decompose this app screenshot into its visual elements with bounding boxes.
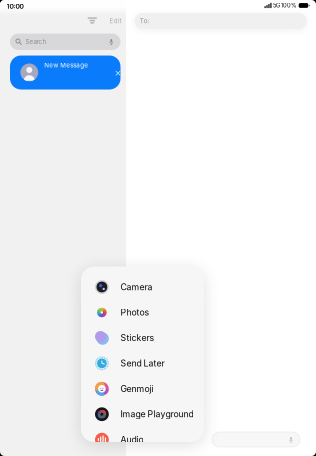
staticText: 5G [273, 2, 280, 9]
staticText: Audio [120, 434, 143, 445]
staticText: Image Playground [120, 409, 193, 419]
staticText: 10:00 [7, 2, 24, 10]
staticText: Genmoji [120, 383, 153, 394]
staticText: Photos [120, 307, 149, 318]
staticText: Send Later [120, 358, 164, 369]
button[interactable]: New Message [10, 55, 120, 89]
staticText: Edit [110, 17, 122, 25]
staticText: Camera [120, 282, 152, 292]
button[interactable]: Photos [81, 300, 204, 325]
button[interactable]: Stickers [81, 325, 204, 351]
button[interactable]: Image Playground [81, 401, 204, 427]
button[interactable]: Genmoji [81, 376, 204, 401]
staticText: To: [140, 17, 150, 25]
button[interactable]: Edit [110, 17, 122, 25]
button[interactable]: Send Later [81, 351, 204, 376]
staticText: New Message [44, 61, 88, 69]
button[interactable]: Camera [81, 274, 204, 300]
staticText: Stickers [120, 333, 154, 343]
staticText: 100% [281, 2, 297, 9]
staticText: Search [25, 38, 46, 45]
button[interactable]: Audio [81, 427, 204, 452]
button[interactable]: Filter [88, 17, 97, 24]
